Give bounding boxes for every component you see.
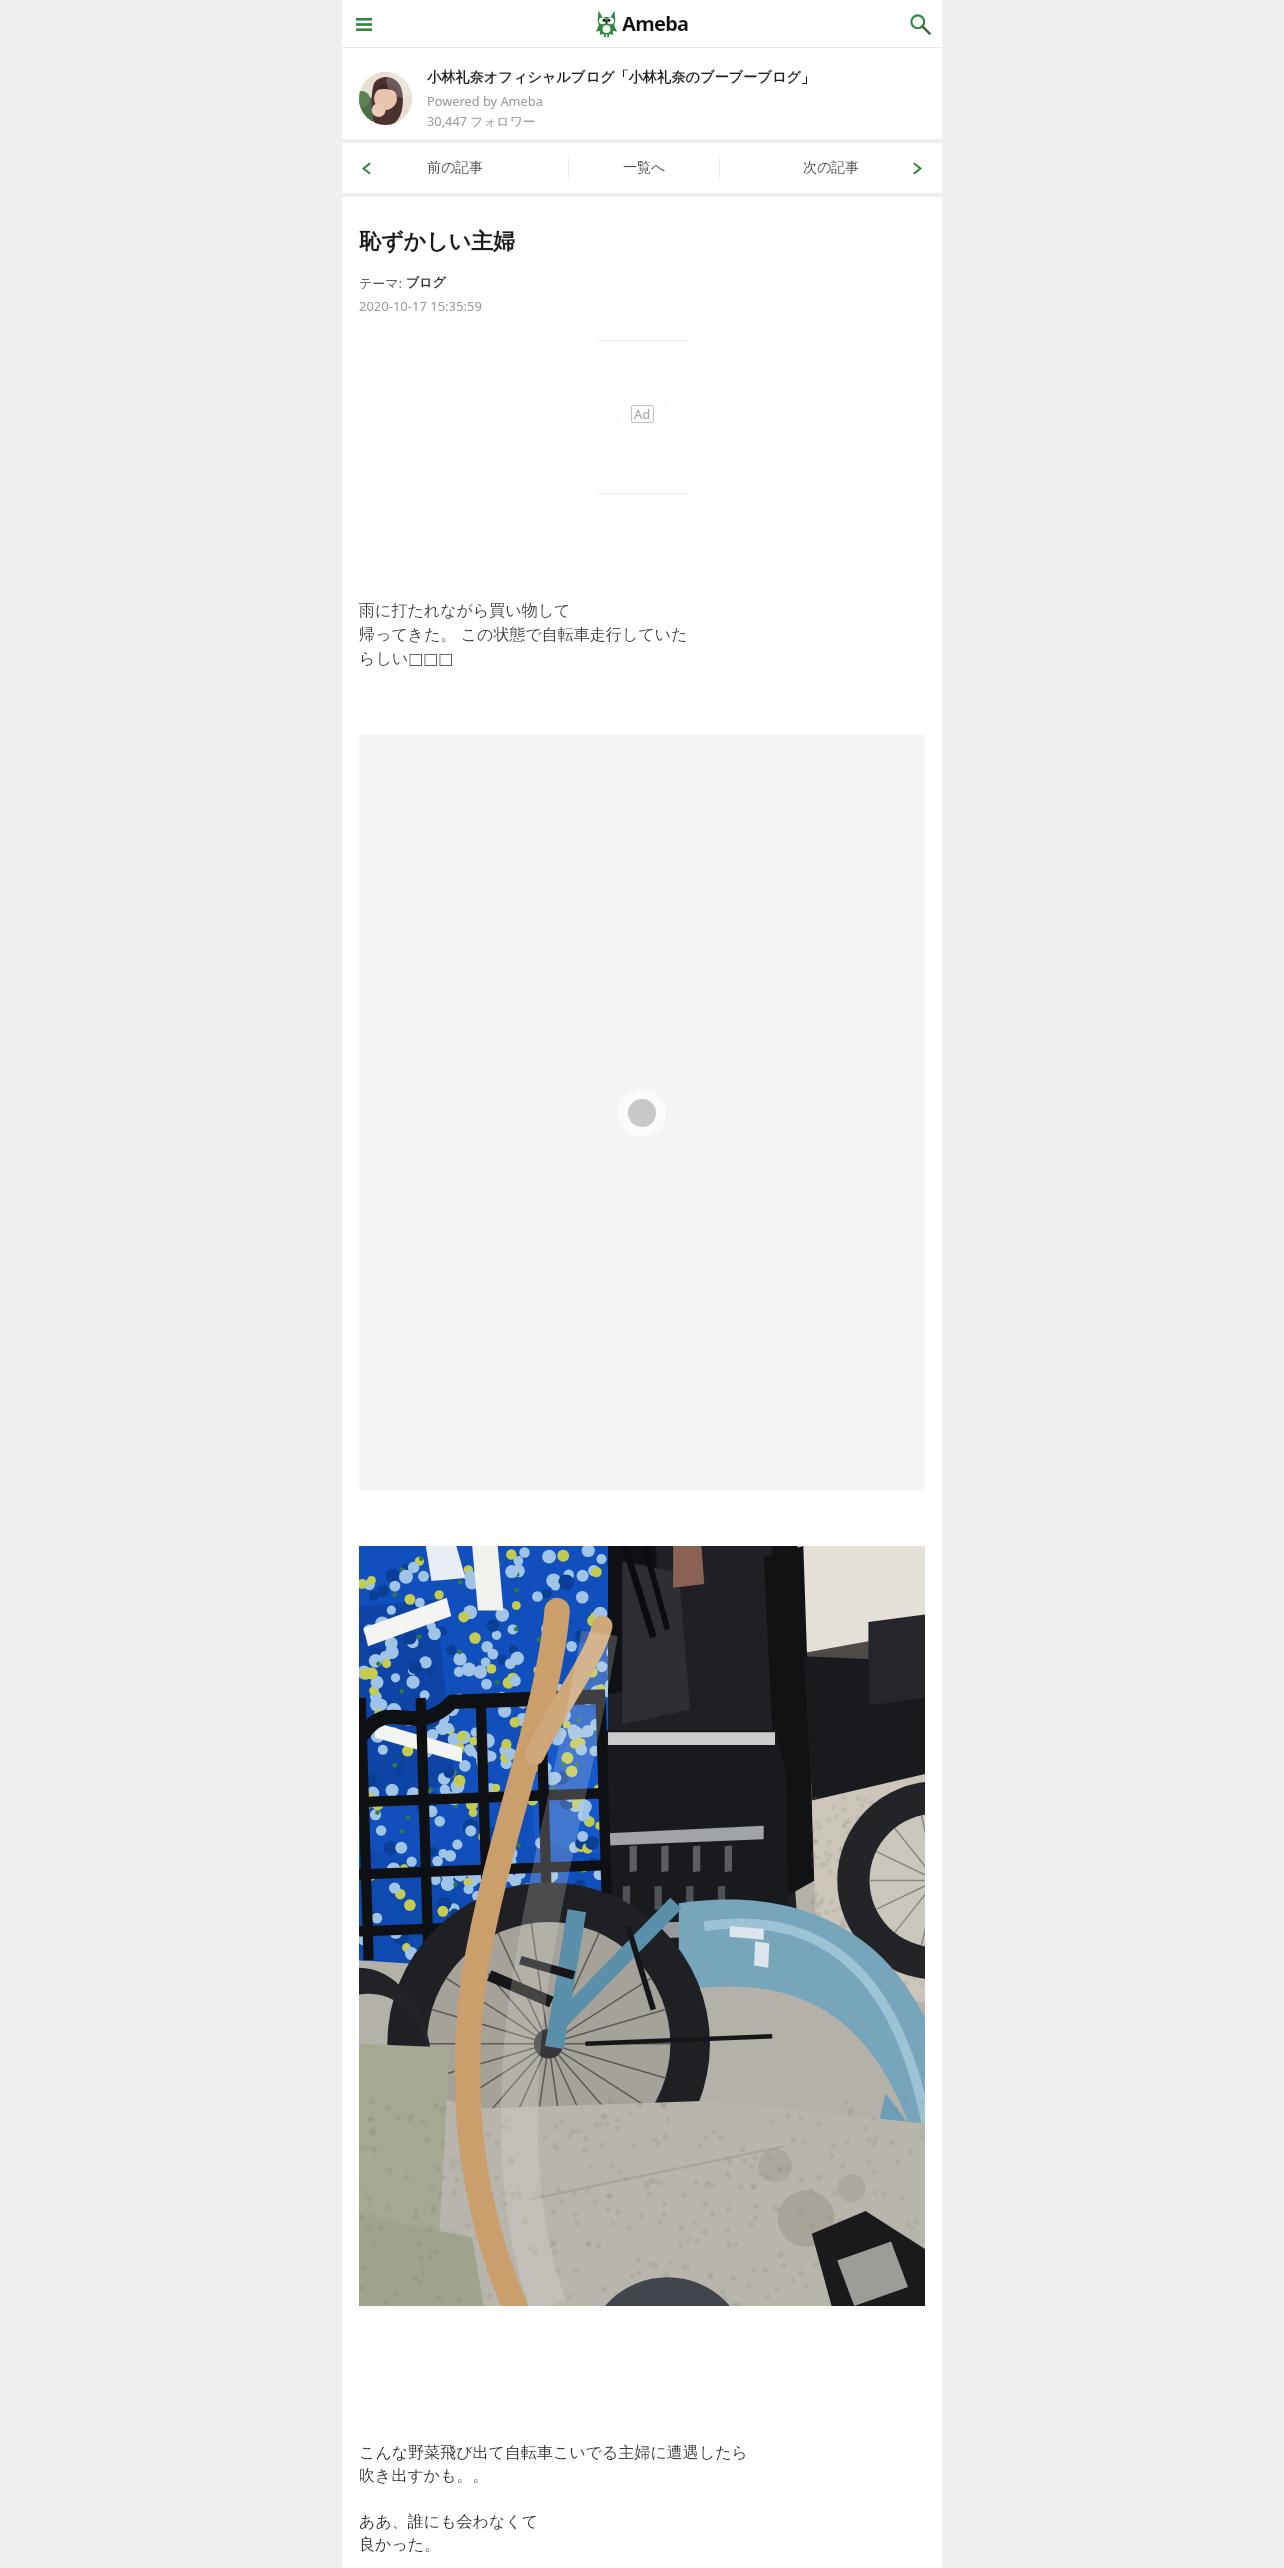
button[interactable]: Search <box>901 5 939 43</box>
button[interactable]: Photo of a bicycle in the rain <box>359 1546 925 2306</box>
button[interactable]: 前の記事 <box>342 143 568 193</box>
staticText: Ameba <box>622 10 689 37</box>
staticText: 雨に打たれながら買い物して 帰ってきた。 この状態で自転車走行していた らしい□… <box>359 601 688 669</box>
staticText: 次の記事 <box>803 159 860 177</box>
button[interactable]: Menu <box>345 5 383 43</box>
staticText: 恥ずかしい主婦 <box>359 228 516 256</box>
staticText: Ad <box>634 405 651 423</box>
staticText: 2020-10-17 15:35:59 <box>359 297 482 315</box>
staticText: 小林礼奈オフィシャルブログ「小林礼奈のブーブーブログ」 <box>427 68 816 86</box>
button[interactable]: 一覧へ <box>569 143 719 193</box>
button[interactable]: 小林礼奈オフィシャルブログ「小林礼奈のブーブーブログ」 <box>342 48 942 139</box>
staticText: Powered by Ameba <box>427 92 543 109</box>
button[interactable]: Advertisement <box>616 388 668 440</box>
staticText: こんな野菜飛び出て自転車こいでる主婦に遭遇したら 吹き出すかも。。 ああ、誰にも… <box>359 2443 748 2555</box>
staticText: ブログ <box>406 274 446 290</box>
button[interactable]: 次の記事 <box>720 143 942 193</box>
button[interactable]: Ameba home <box>596 10 689 37</box>
staticText: テーマ: <box>359 274 406 292</box>
staticText: 前の記事 <box>427 159 484 177</box>
button[interactable]: テーマ: <box>359 274 446 292</box>
staticText: 一覧へ <box>623 159 666 177</box>
staticText: 30,447 フォロワー <box>427 112 536 129</box>
